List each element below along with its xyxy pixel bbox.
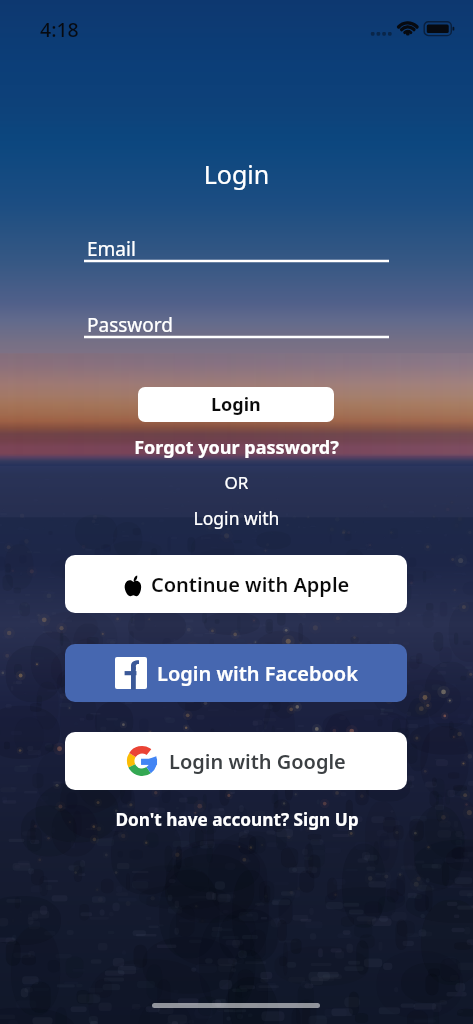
button[interactable]: Email [84, 234, 389, 262]
staticText: Forgot your password? [134, 435, 339, 460]
staticText: Continue with Apple [151, 571, 350, 598]
staticText: Login [0, 157, 473, 191]
button[interactable]: Password [84, 310, 389, 338]
staticText: Email [87, 236, 136, 262]
staticText: 4:18 [40, 16, 79, 43]
button[interactable]: Don't have account? Sign Up [0, 808, 473, 831]
button[interactable]: Google logo [65, 732, 407, 790]
staticText: OR [0, 471, 473, 494]
other: Facebook logo [115, 657, 147, 689]
staticText: Login with Facebook [157, 660, 358, 687]
other: Apple logo [123, 575, 143, 595]
staticText: Login with [0, 506, 473, 530]
staticText: Login with Google [169, 748, 346, 775]
staticText: Password [87, 312, 173, 338]
other: Google logo [126, 745, 158, 777]
button[interactable]: Forgot your password? [0, 435, 473, 460]
button[interactable]: Facebook logo [65, 644, 407, 702]
staticText: Login [211, 392, 261, 417]
button[interactable]: Login [138, 387, 334, 422]
button[interactable]: Apple logo [65, 555, 407, 613]
staticText: Don't have account? Sign Up [115, 808, 359, 831]
